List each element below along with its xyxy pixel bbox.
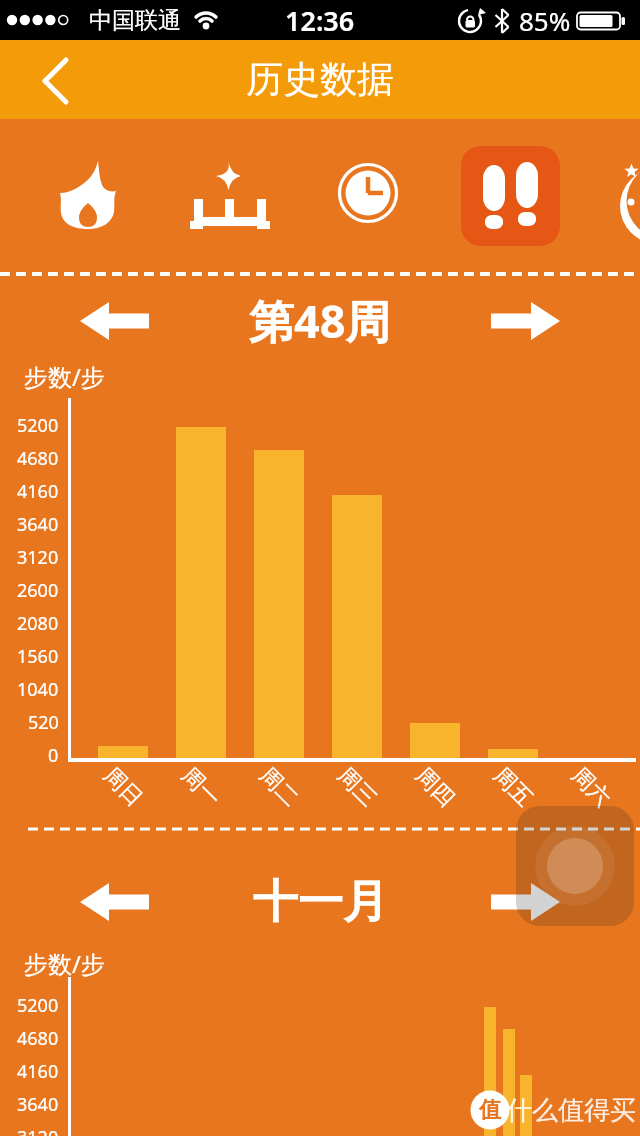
- staticText: 历史数据: [246, 56, 394, 103]
- staticText: 4160: [17, 479, 59, 503]
- staticText: 十一月: [253, 874, 388, 931]
- staticText: 520: [28, 710, 59, 734]
- staticText: 周一: [175, 761, 226, 812]
- staticText: 4680: [17, 1026, 59, 1050]
- staticText: 4680: [17, 446, 59, 470]
- staticText: 12:36: [285, 2, 355, 39]
- button[interactable]: [490, 883, 560, 921]
- staticText: 5200: [17, 993, 59, 1017]
- staticText: 步数/步: [24, 947, 105, 977]
- staticText: 2080: [17, 611, 59, 635]
- button[interactable]: [461, 146, 560, 246]
- button[interactable]: [0, 40, 100, 119]
- staticText: 0: [48, 743, 59, 767]
- staticText: 3120: [17, 1125, 59, 1136]
- staticText: 3120: [17, 545, 59, 569]
- staticText: 1040: [17, 677, 59, 701]
- staticText: 值: [479, 1096, 501, 1124]
- button[interactable]: [38, 146, 138, 246]
- staticText: 周二: [253, 761, 304, 812]
- staticText: 周五: [487, 761, 538, 812]
- staticText: 3640: [17, 1092, 59, 1116]
- staticText: 4160: [17, 1059, 59, 1083]
- button[interactable]: [178, 146, 278, 246]
- staticText: 周日: [97, 761, 148, 812]
- button[interactable]: [318, 146, 418, 246]
- staticText: 1560: [17, 644, 59, 668]
- button[interactable]: [80, 883, 150, 921]
- staticText: 第48周: [249, 290, 391, 350]
- staticText: 什么值得买: [506, 1094, 636, 1127]
- staticText: 周三: [331, 761, 382, 812]
- staticText: 5200: [17, 413, 59, 437]
- button[interactable]: [80, 302, 150, 340]
- staticText: 85%: [519, 3, 571, 38]
- staticText: 周六: [565, 761, 616, 812]
- button[interactable]: [490, 302, 560, 340]
- button[interactable]: [600, 146, 640, 246]
- staticText: 3640: [17, 512, 59, 536]
- staticText: 周四: [409, 761, 460, 812]
- button[interactable]: [516, 806, 634, 926]
- staticText: 中国联通: [89, 6, 181, 35]
- staticText: 2600: [17, 578, 59, 602]
- staticText: 步数/步: [24, 360, 105, 390]
